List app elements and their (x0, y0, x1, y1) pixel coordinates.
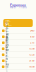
staticText: 2.75 (30, 41, 34, 44)
staticText: Expenses (10, 3, 26, 7)
staticText: Mon 12 (5, 51, 8, 58)
staticText: TOTAL DUE (5, 20, 11, 22)
staticText: Sun 11 (6, 68, 8, 72)
staticText: 8.50 (30, 35, 34, 38)
staticText: March · 7 items (9, 6, 26, 9)
staticText: Yesterday (6, 42, 9, 51)
button[interactable]: Lunch (0, 52, 36, 58)
staticText: Pharmacy (5, 36, 8, 47)
staticText: Sun 11 (5, 66, 8, 71)
staticText: 12.25 (29, 53, 34, 56)
staticText: Lunch (5, 46, 8, 51)
staticText: 18.00 (29, 65, 34, 68)
button[interactable]: Groceries (0, 28, 36, 34)
staticText: Cinema (5, 55, 8, 66)
staticText: Today (6, 41, 9, 46)
staticText: Transit (6, 34, 9, 42)
staticText: 24.10 (30, 29, 34, 32)
staticText: 15.00 (29, 47, 34, 50)
button[interactable]: Transit (0, 40, 36, 46)
button[interactable]: Coffee shop (0, 34, 36, 40)
button[interactable]: Bookstore (0, 58, 36, 64)
staticText: 31.00 (29, 59, 34, 62)
button[interactable]: Cinema (0, 64, 36, 70)
staticText: $121.50 (5, 22, 11, 26)
staticText: Groceries (6, 22, 9, 35)
staticText: Coffee shop (6, 28, 9, 41)
staticText: Today (6, 35, 9, 40)
staticText: Mon 12 (5, 47, 8, 53)
staticText: Bookstore (6, 46, 8, 68)
button[interactable]: Pharmacy (0, 46, 36, 52)
